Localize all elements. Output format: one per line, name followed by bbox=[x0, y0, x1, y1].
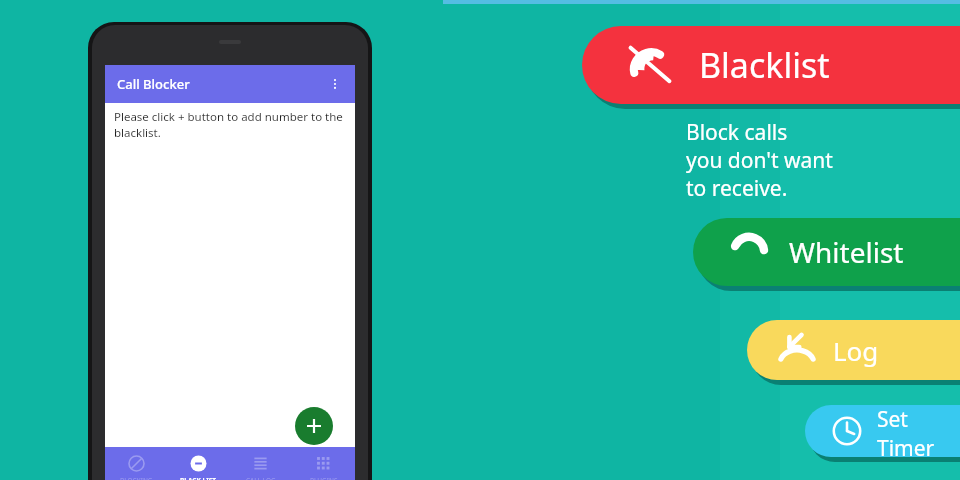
button[interactable]: BLACK LIST bbox=[167, 447, 229, 480]
staticText: CALL LOG bbox=[246, 476, 276, 480]
button[interactable]: Blacklist bbox=[582, 26, 960, 104]
staticText: PLUGINS bbox=[310, 476, 338, 480]
staticText: BLOCKING bbox=[120, 476, 153, 480]
staticText: Set Timer bbox=[877, 405, 960, 457]
staticText: Please click + button to add number to t… bbox=[114, 109, 347, 140]
button[interactable]: Log bbox=[747, 320, 960, 380]
button[interactable]: BLOCKING bbox=[105, 447, 167, 480]
staticText: Whitelist bbox=[789, 233, 904, 271]
staticText: Blacklist bbox=[699, 42, 830, 88]
button[interactable]: Call Blocker bbox=[105, 65, 355, 103]
button[interactable]: CALL LOG bbox=[229, 447, 292, 480]
staticText: Log bbox=[833, 333, 879, 368]
button[interactable]: Add number bbox=[295, 407, 333, 445]
button[interactable]: PLUGINS bbox=[292, 447, 355, 480]
staticText: Call Blocker bbox=[117, 75, 190, 93]
button[interactable]: Whitelist bbox=[693, 218, 960, 286]
button[interactable]: Set Timer bbox=[805, 405, 960, 457]
staticText: Block calls you don't want to receive. bbox=[686, 118, 833, 202]
staticText: BLACK LIST bbox=[180, 476, 216, 480]
button[interactable]: More options bbox=[323, 72, 347, 96]
